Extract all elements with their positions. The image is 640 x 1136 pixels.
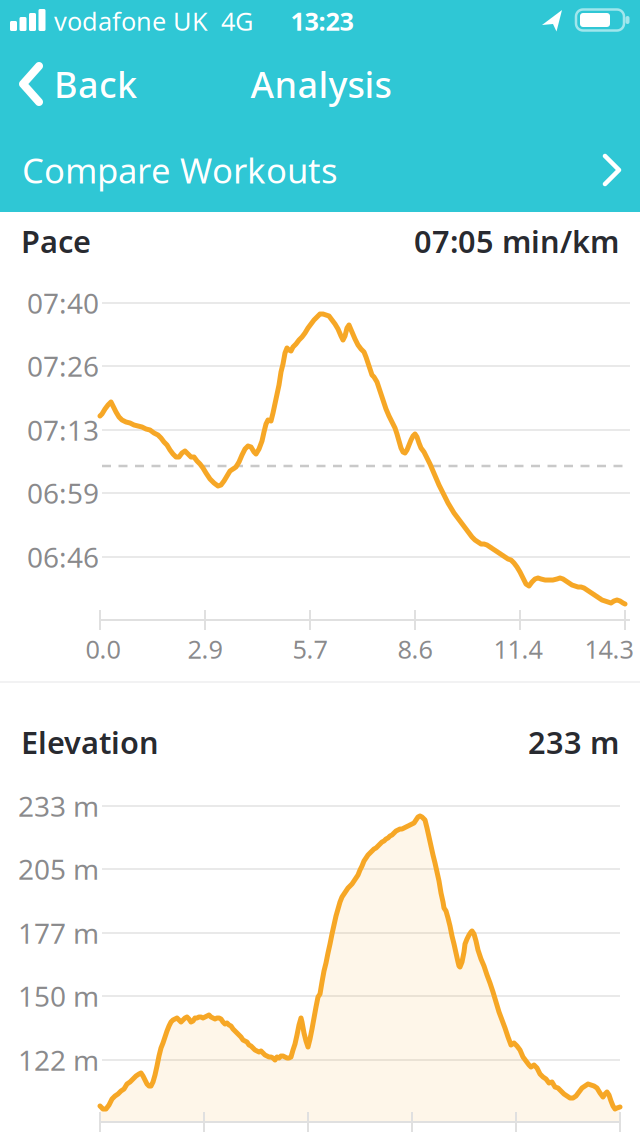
staticText: 4G	[221, 4, 253, 38]
staticText: 11.4	[493, 632, 542, 666]
staticText: 14.3	[584, 632, 633, 666]
staticText: Elevation	[21, 722, 159, 762]
staticText: Back	[54, 60, 137, 108]
staticText: Pace	[21, 221, 91, 261]
staticText: 0.0	[85, 632, 120, 666]
staticText: Compare Workouts	[22, 147, 338, 193]
staticText: 06:46	[27, 538, 99, 576]
staticText: 07:26	[27, 347, 99, 385]
staticText: 122 m	[18, 1041, 99, 1079]
staticText: 233 m	[528, 722, 619, 762]
staticText: 8.6	[397, 632, 432, 666]
button[interactable]: Back	[19, 40, 137, 128]
staticText: 06:59	[27, 474, 99, 512]
staticText: 233 m	[18, 787, 99, 825]
staticText: 13:23	[290, 4, 353, 38]
staticText: 205 m	[18, 850, 99, 888]
button[interactable]: Compare Workouts	[0, 128, 640, 212]
staticText: 07:05 min/km	[414, 221, 619, 261]
staticText: vodafone UK	[54, 4, 208, 38]
staticText: 150 m	[18, 977, 99, 1015]
staticText: 177 m	[18, 914, 99, 952]
staticText: Analysis	[250, 60, 391, 108]
staticText: 07:40	[27, 284, 99, 322]
staticText: 5.7	[292, 632, 327, 666]
staticText: 2.9	[187, 632, 222, 666]
staticText: 07:13	[27, 411, 99, 449]
